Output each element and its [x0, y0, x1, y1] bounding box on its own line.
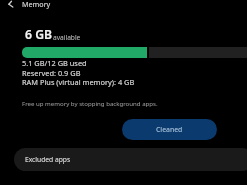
button[interactable]: Navigate up [0, 0, 22, 18]
staticText: Memory [22, 0, 51, 9]
staticText: Cleaned [156, 125, 183, 134]
button[interactable]: Excluded apps [14, 148, 247, 171]
staticText: 5.1 GB/12 GB used [22, 58, 87, 68]
staticText: Reserved: 0.9 GB [22, 68, 81, 78]
staticText: Free up memory by stopping background ap… [22, 99, 158, 107]
staticText: RAM Plus (virtual memory): 4 GB [22, 77, 135, 87]
button[interactable]: Cleaned [122, 119, 217, 140]
staticText: 6 GB [25, 26, 53, 43]
staticText: available [53, 33, 81, 42]
staticText: Excluded apps [25, 155, 71, 164]
